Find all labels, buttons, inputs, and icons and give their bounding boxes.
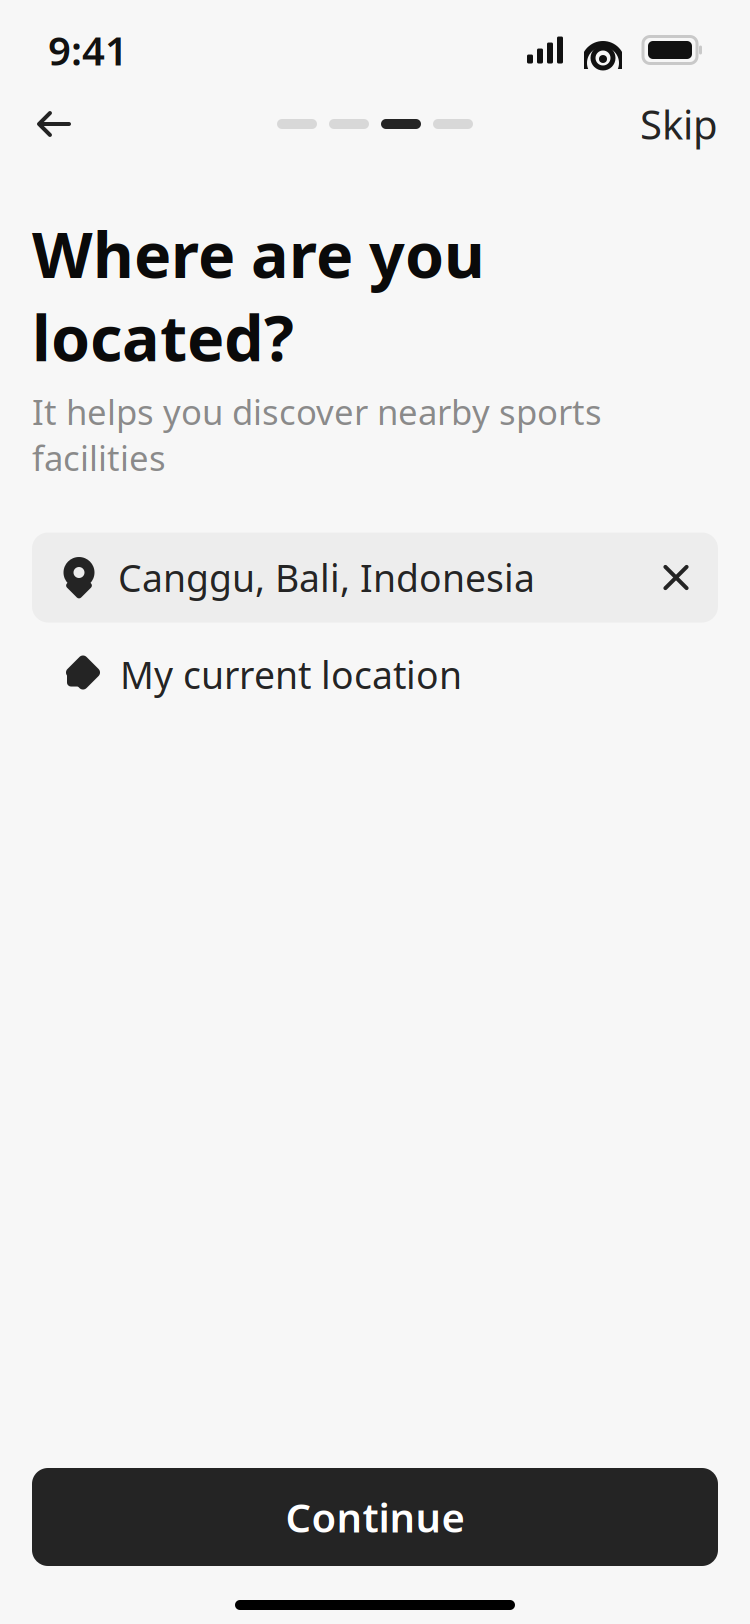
staticText: Continue bbox=[285, 1490, 464, 1543]
staticText: Canggu, Bali, Indonesia bbox=[118, 553, 535, 602]
staticText: My current location bbox=[120, 650, 462, 699]
button[interactable]: Back bbox=[32, 102, 76, 146]
button[interactable]: Skip bbox=[640, 102, 718, 146]
button[interactable]: Continue bbox=[32, 1468, 718, 1566]
staticText: Skip bbox=[640, 97, 718, 150]
button[interactable]: Canggu, Bali, Indonesia bbox=[32, 532, 718, 622]
button[interactable]: My current location bbox=[32, 642, 718, 706]
staticText: Where are you located? bbox=[32, 212, 485, 378]
staticText: It helps you discover nearby sports faci… bbox=[32, 388, 602, 480]
staticText: 9:41 bbox=[48, 23, 128, 76]
